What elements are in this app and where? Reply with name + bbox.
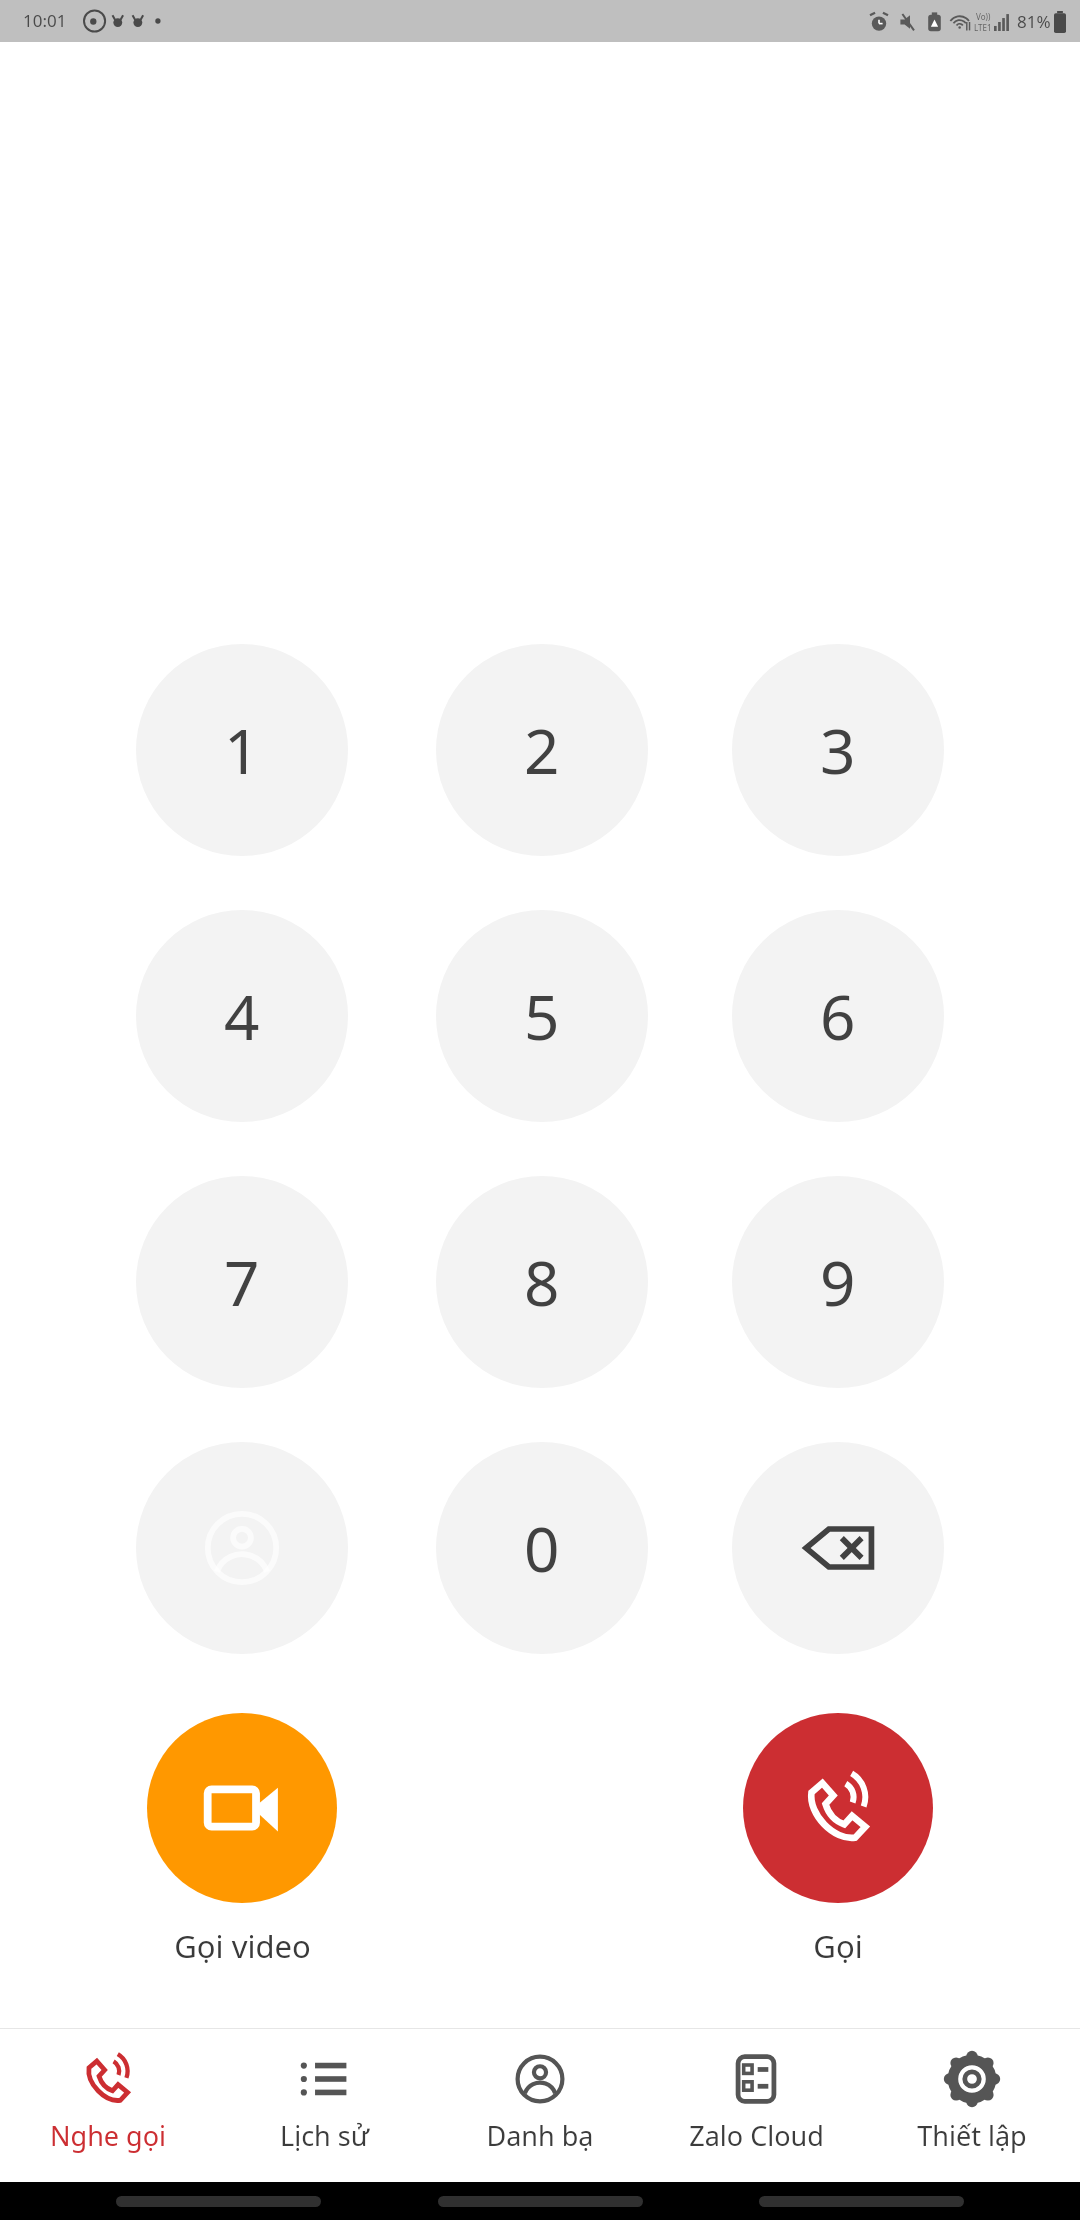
button[interactable]: 4 — [136, 910, 348, 1122]
staticText: 81% — [1017, 10, 1051, 33]
staticText: 6 — [820, 974, 856, 1058]
button[interactable]: Lịch sử — [216, 2029, 432, 2182]
button[interactable]: 8 — [436, 1176, 648, 1388]
button[interactable]: Delete — [732, 1442, 944, 1654]
button[interactable]: 2 — [436, 644, 648, 856]
button[interactable]: Danh bạ — [432, 2029, 648, 2182]
button[interactable]: 9 — [732, 1176, 944, 1388]
staticText: 3 — [820, 708, 856, 792]
staticText: 10:01 — [23, 9, 67, 32]
staticText: Gọi — [813, 1925, 863, 1967]
staticText: 1 — [224, 708, 260, 792]
button[interactable]: 3 — [732, 644, 944, 856]
staticText: Nghe gọi — [50, 2117, 166, 2154]
button[interactable]: Zalo Cloud — [648, 2029, 864, 2182]
staticText: 4 — [224, 974, 260, 1058]
staticText: Lịch sử — [280, 2117, 369, 2154]
button[interactable]: Contacts — [136, 1442, 348, 1654]
button[interactable]: 6 — [732, 910, 944, 1122]
button[interactable]: 7 — [136, 1176, 348, 1388]
staticText: 2 — [524, 708, 560, 792]
button[interactable] — [759, 2196, 964, 2207]
staticText: Vo)) — [976, 11, 991, 22]
button[interactable]: 0 — [436, 1442, 648, 1654]
staticText: 5 — [524, 974, 560, 1058]
button[interactable] — [116, 2196, 321, 2207]
button[interactable]: 1 — [136, 644, 348, 856]
button[interactable]: Gọi — [718, 1713, 958, 1967]
staticText: 0 — [524, 1506, 560, 1590]
button[interactable]: Thiết lập — [864, 2029, 1080, 2182]
staticText: 8 — [524, 1240, 560, 1324]
staticText: Danh bạ — [486, 2117, 594, 2154]
staticText: 9 — [820, 1240, 856, 1324]
button[interactable]: Gọi video — [122, 1713, 362, 1967]
button[interactable]: 5 — [436, 910, 648, 1122]
staticText: Thiết lập — [917, 2117, 1027, 2154]
button[interactable] — [438, 2196, 643, 2207]
staticText: Zalo Cloud — [689, 2117, 824, 2154]
staticText: 7 — [224, 1240, 260, 1324]
staticText: LTE1 — [974, 22, 992, 33]
staticText: Gọi video — [174, 1925, 311, 1967]
button[interactable]: Nghe gọi — [0, 2029, 216, 2182]
